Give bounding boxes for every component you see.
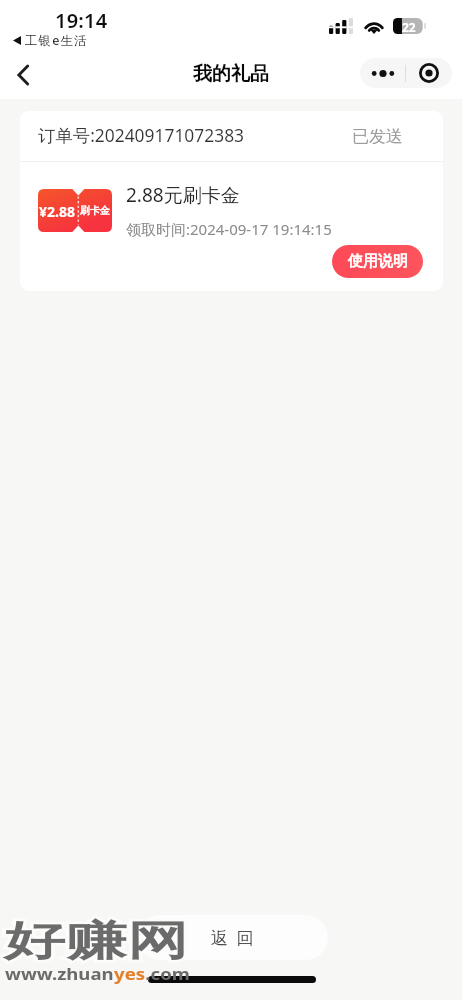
button[interactable]: ¥2.88: [20, 162, 443, 242]
staticText: .com: [145, 963, 191, 985]
staticText: 22: [402, 19, 416, 35]
staticText: 已发送: [352, 126, 403, 147]
button[interactable]: 返 回: [138, 915, 328, 960]
button[interactable]: More options: [360, 58, 405, 88]
staticText: 订单号:202409171072383: [38, 123, 245, 147]
staticText: www.zhuan: [5, 963, 114, 985]
button[interactable]: 使用说明: [332, 245, 423, 278]
staticText: 2.88元刷卡金: [126, 182, 240, 208]
staticText: 使用说明: [348, 252, 408, 271]
staticText: ¥2.88: [39, 202, 75, 221]
staticText: yes: [114, 963, 145, 985]
staticText: 我的礼品: [193, 62, 269, 86]
staticText: 工银e生活: [25, 32, 88, 49]
staticText: 19:14: [55, 7, 108, 34]
button[interactable]: Back: [4, 56, 42, 94]
staticText: 好赚网: [4, 916, 188, 968]
staticText: 好赚网: [4, 916, 188, 968]
staticText: 返 回: [211, 926, 256, 949]
staticText: 领取时间:2024-09-17 19:14:15: [126, 219, 332, 239]
button[interactable]: Close mini program: [406, 58, 452, 88]
staticText: 刷卡金: [80, 204, 110, 217]
